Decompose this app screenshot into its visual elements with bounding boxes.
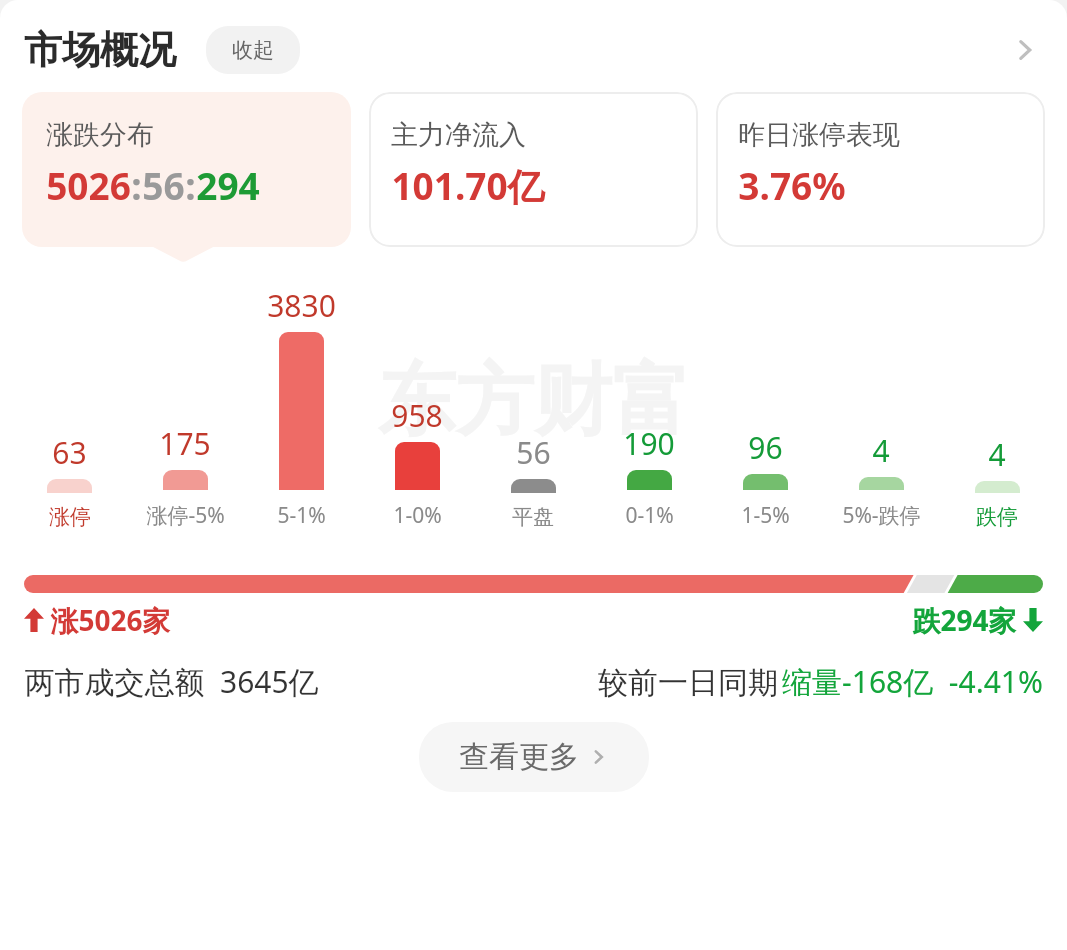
staticText: 56	[516, 432, 551, 473]
staticText: 5%-跌停	[842, 501, 921, 530]
staticText: :	[185, 160, 196, 210]
button[interactable]: 主力净流入	[369, 92, 698, 247]
staticText: 缩量-168亿 -4.41%	[782, 661, 1043, 702]
staticText: 查看更多	[459, 738, 579, 776]
staticText: 平盘	[512, 504, 554, 530]
button[interactable]: More	[1001, 26, 1049, 74]
staticText: 1-0%	[393, 501, 442, 530]
staticText: 56	[142, 160, 185, 210]
staticText: 跌294家	[912, 601, 1017, 639]
staticText: 涨停-5%	[146, 501, 225, 530]
staticText: 190	[623, 423, 675, 464]
staticText: :	[131, 160, 142, 210]
staticText: 东方财富	[378, 352, 690, 450]
staticText: 5-1%	[277, 501, 326, 530]
staticText: 96	[748, 427, 783, 468]
staticText: 涨5026家	[50, 601, 171, 639]
staticText: 两市成交总额 3645亿	[24, 661, 319, 702]
staticText: 175	[159, 423, 211, 464]
staticText: 958	[391, 395, 443, 436]
staticText: 3830	[267, 285, 336, 326]
staticText: 4	[872, 430, 890, 471]
staticText: 63	[52, 432, 87, 473]
staticText: 294	[196, 160, 260, 210]
staticText: 市场概况	[24, 26, 176, 74]
staticText: 涨跌分布	[46, 118, 154, 152]
button[interactable]: 昨日涨停表现	[716, 92, 1045, 247]
staticText: 101.70亿	[391, 160, 545, 211]
staticText: 收起	[232, 37, 274, 63]
staticText: 4	[988, 434, 1006, 475]
staticText: 1-5%	[741, 501, 790, 530]
button[interactable]: 收起	[206, 26, 300, 74]
staticText: 跌停	[976, 504, 1018, 530]
staticText: 昨日涨停表现	[738, 118, 900, 152]
button[interactable]: 查看更多	[419, 722, 649, 792]
staticText: 涨停	[49, 504, 91, 530]
staticText: 0-1%	[625, 501, 674, 530]
button[interactable]: 涨跌分布	[22, 92, 351, 247]
staticText: 主力净流入	[391, 118, 526, 152]
staticText: 较前一日同期	[594, 661, 782, 702]
staticText: 3.76%	[738, 160, 846, 210]
staticText: 5026	[46, 160, 131, 210]
